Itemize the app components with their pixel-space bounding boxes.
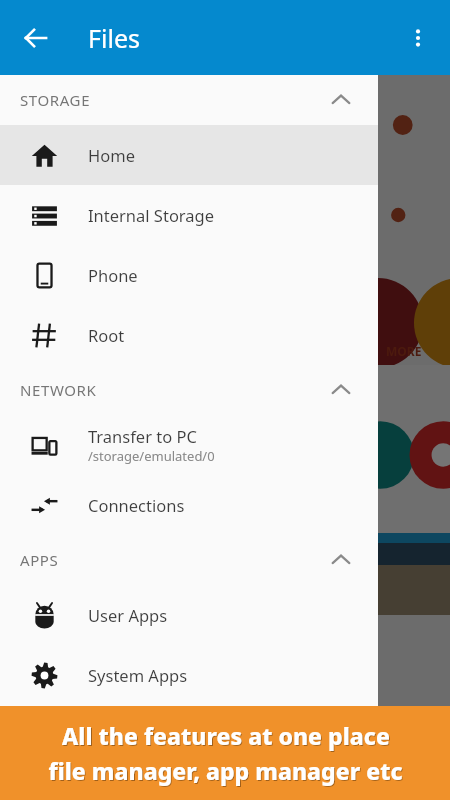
staticText: file manager, app manager etc [49,756,404,787]
button[interactable]: NETWORK [0,365,378,415]
staticText: All the features at one place [63,721,391,752]
button[interactable]: User Apps [0,585,378,645]
button[interactable]: Connections [0,475,378,535]
staticText: file manager, app manager etc [48,755,403,786]
button[interactable]: APPS [0,535,378,585]
staticText: Root [88,324,125,346]
staticText: Home [88,144,135,166]
staticText: STORAGE [20,90,91,110]
button[interactable]: Root [0,305,378,365]
staticText: Files [88,21,140,55]
staticText: System Apps [88,664,188,686]
button[interactable]: STORAGE [0,75,378,125]
staticText: /storage/emulated/0 [88,447,215,465]
staticText: User Apps [88,604,168,626]
button[interactable]: System Apps [0,645,378,705]
button[interactable]: Home [0,125,378,185]
button[interactable]: Transfer to PC [0,415,378,475]
staticText: Connections [88,494,185,516]
button[interactable]: All the features at one place [0,706,450,800]
staticText: APPS [20,550,59,570]
staticText: All the features at one place [62,720,390,751]
button[interactable]: More options [394,14,442,62]
staticText: MORE [386,343,422,359]
staticText: Phone [88,264,138,286]
button[interactable]: Back [12,14,60,62]
button[interactable]: Phone [0,245,378,305]
button[interactable]: Internal Storage [0,185,378,245]
staticText: Internal Storage [88,204,215,226]
staticText: Transfer to PC [88,425,197,447]
staticText: NETWORK [20,380,97,400]
